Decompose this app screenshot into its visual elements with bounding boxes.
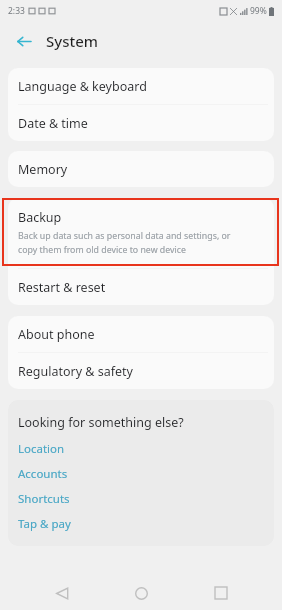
staticText: Restart & reset xyxy=(18,279,106,296)
staticText: Accounts xyxy=(18,466,68,482)
staticText: About phone xyxy=(18,326,95,343)
staticText: 2:33 xyxy=(8,5,25,17)
staticText: Location xyxy=(18,441,65,457)
button[interactable]: Backup xyxy=(8,198,274,268)
staticText: System xyxy=(46,31,99,51)
staticText: Memory xyxy=(18,161,68,178)
button[interactable]: Regulatory & safety xyxy=(8,353,274,389)
button[interactable]: Location xyxy=(18,441,65,457)
button[interactable]: Tap & pay xyxy=(18,516,71,532)
staticText: Language & keyboard xyxy=(18,78,147,95)
staticText: Looking for something else? xyxy=(18,414,184,431)
button[interactable]: Date & time xyxy=(8,105,274,141)
button[interactable]: Shortcuts xyxy=(18,491,70,507)
staticText: Backup xyxy=(18,209,62,226)
button[interactable]: About phone xyxy=(8,316,274,352)
button[interactable]: Back xyxy=(12,30,34,52)
staticText: copy them from old device to new device xyxy=(18,244,186,256)
staticText: Tap & pay xyxy=(18,516,71,532)
button[interactable]: Language & keyboard xyxy=(8,68,274,104)
staticText: Regulatory & safety xyxy=(18,363,133,380)
staticText: Date & time xyxy=(18,115,88,132)
button[interactable]: Restart & reset xyxy=(8,269,274,305)
staticText: Back up data such as personal data and s… xyxy=(18,230,231,242)
staticText: 99% xyxy=(250,5,267,17)
staticText: Shortcuts xyxy=(18,491,70,507)
button[interactable]: Back xyxy=(44,576,80,610)
button[interactable]: Recents xyxy=(203,576,239,610)
button[interactable]: Accounts xyxy=(18,466,68,482)
button[interactable]: Memory xyxy=(8,151,274,187)
button[interactable]: Home xyxy=(123,576,159,610)
